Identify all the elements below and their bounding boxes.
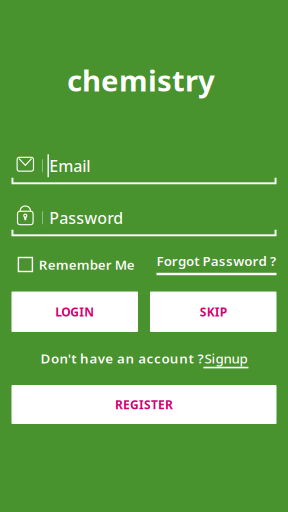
staticText: Remember Me xyxy=(39,256,135,273)
button[interactable]: Password xyxy=(11,206,276,236)
staticText: Email xyxy=(49,155,90,176)
staticText: Password xyxy=(49,207,123,228)
button[interactable]: REGISTER xyxy=(11,385,276,424)
button[interactable]: SKIP xyxy=(150,291,276,332)
staticText: Don't have an account ? xyxy=(41,349,203,367)
staticText: chemistry xyxy=(67,60,215,99)
staticText: SKIP xyxy=(200,304,227,320)
staticText: REGISTER xyxy=(115,396,173,412)
button[interactable]: Email xyxy=(11,154,276,184)
staticText: Forgot Password ? xyxy=(156,252,276,270)
button[interactable]: Forgot Password ? xyxy=(156,254,276,275)
button[interactable]: LOGIN xyxy=(11,291,138,332)
button[interactable]: Remember Me xyxy=(18,253,135,275)
button[interactable]: Signup xyxy=(203,351,248,369)
staticText: LOGIN xyxy=(55,304,94,320)
staticText: Signup xyxy=(204,349,247,367)
